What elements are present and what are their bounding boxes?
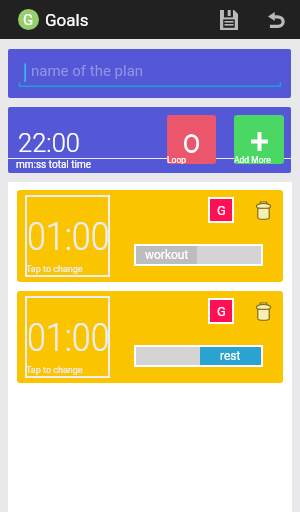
staticText: Goals <box>45 10 89 30</box>
button[interactable]: G <box>210 300 232 322</box>
button[interactable]: Delete <box>249 297 277 325</box>
button[interactable]: Undo <box>256 0 296 39</box>
button[interactable]: rest <box>136 347 261 365</box>
button[interactable]: name of the plan <box>8 49 291 98</box>
button[interactable]: Delete <box>249 196 277 224</box>
staticText: mm:ss total time <box>16 159 92 171</box>
button[interactable]: Save <box>209 0 249 39</box>
staticText: G <box>23 11 34 29</box>
button[interactable]: 01:00 <box>25 296 110 378</box>
staticText: workout <box>145 248 189 262</box>
button[interactable]: G <box>210 199 232 221</box>
button[interactable]: 01:00 <box>25 195 110 277</box>
button[interactable]: Add More <box>234 115 284 164</box>
staticText: G <box>217 203 226 218</box>
staticText: name of the plan <box>31 62 144 80</box>
button[interactable]: workout <box>136 246 261 264</box>
staticText: 01:00 <box>27 214 110 259</box>
staticText: rest <box>220 349 241 363</box>
button[interactable]: Loop <box>167 115 216 164</box>
staticText: 01:00 <box>27 315 110 360</box>
staticText: Loop <box>167 155 187 164</box>
staticText: Tap to change <box>26 264 83 275</box>
staticText: Add More <box>234 155 271 164</box>
staticText: 22:00 <box>18 128 80 158</box>
staticText: Tap to change <box>26 365 83 376</box>
staticText: G <box>217 304 226 319</box>
